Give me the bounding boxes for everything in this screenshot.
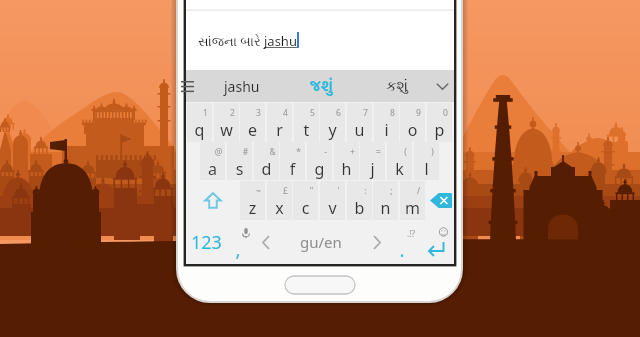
button[interactable]: = [360, 142, 385, 180]
staticText: ( [393, 146, 412, 158]
button[interactable]: Enter [419, 220, 454, 264]
staticText: 2 [220, 107, 239, 119]
staticText: 7 [353, 107, 372, 119]
staticText: 0 [433, 107, 452, 119]
button[interactable]: * [280, 142, 305, 180]
staticText: gu/en [300, 232, 342, 252]
button[interactable]: + [334, 142, 359, 180]
button[interactable]: jashu [210, 70, 274, 102]
staticText: h [334, 158, 359, 180]
button[interactable]: ; [373, 181, 398, 220]
staticText: ; [379, 185, 398, 197]
staticText: l [414, 158, 439, 180]
button[interactable]: Comma, voice input [225, 220, 253, 264]
staticText: .!? [397, 228, 425, 239]
button[interactable]: 5 [294, 103, 319, 142]
staticText: @ [206, 146, 225, 158]
button[interactable]: 3 [240, 103, 265, 142]
button[interactable]: 0 [427, 103, 452, 142]
staticText: ~ [246, 185, 265, 197]
button[interactable]: : [347, 181, 372, 220]
staticText: y [320, 119, 345, 141]
staticText: i [374, 119, 399, 141]
button[interactable]: 2 [214, 103, 239, 142]
staticText: 4 [273, 107, 292, 119]
staticText: c [293, 197, 318, 219]
staticText: & [260, 146, 279, 158]
button[interactable]: £ [267, 181, 292, 220]
button[interactable]: / [400, 181, 425, 220]
button[interactable]: Keyboard menu [186, 70, 202, 102]
button[interactable]: & [254, 142, 279, 180]
staticText: t [294, 119, 319, 141]
staticText: b [347, 197, 372, 219]
button[interactable]: " [293, 181, 318, 220]
staticText: j [360, 158, 385, 180]
staticText: - [313, 146, 332, 158]
staticText: e [240, 119, 265, 141]
staticText: કશું [386, 79, 409, 94]
staticText: q [187, 119, 212, 141]
button[interactable]: ) [414, 142, 439, 180]
button[interactable]: જશું [290, 70, 352, 102]
staticText: w [214, 119, 239, 141]
staticText: . [388, 237, 416, 263]
staticText: " [299, 185, 318, 197]
staticText: k [387, 158, 412, 180]
staticText: + [340, 146, 359, 158]
staticText: f [280, 158, 305, 180]
staticText: = [366, 146, 385, 158]
staticText: 123 [191, 230, 222, 255]
staticText: jashu [264, 32, 297, 50]
button[interactable]: 7 [347, 103, 372, 142]
button[interactable]: Previous [253, 220, 279, 264]
button[interactable]: - [307, 142, 332, 180]
staticText: u [347, 119, 372, 141]
staticText: jashu [224, 77, 260, 96]
button[interactable]: Period [391, 220, 419, 264]
staticText: સાંજના બારે [198, 32, 264, 50]
staticText: a [200, 158, 225, 180]
button[interactable]: Next [363, 220, 391, 264]
staticText: p [427, 119, 452, 141]
button[interactable]: ( [387, 142, 412, 180]
button[interactable]: 123 [187, 220, 225, 264]
staticText: જશું [310, 73, 333, 100]
staticText: ) [420, 146, 439, 158]
button[interactable]: @ [200, 142, 225, 180]
staticText: 6 [326, 107, 345, 119]
staticText: 9 [406, 107, 425, 119]
staticText: : [353, 185, 372, 197]
staticText: 5 [300, 107, 319, 119]
staticText: 1 [193, 107, 212, 119]
staticText: / [406, 185, 425, 197]
staticText: 8 [380, 107, 399, 119]
staticText: z [240, 197, 265, 219]
staticText: r [267, 119, 292, 141]
button[interactable]: 9 [400, 103, 425, 142]
staticText: £ [273, 185, 292, 197]
button[interactable]: 6 [320, 103, 345, 142]
staticText: ' [326, 185, 345, 197]
button[interactable]: કશું [372, 70, 422, 102]
staticText: n [373, 197, 398, 219]
staticText: d [254, 158, 279, 180]
button[interactable]: 1 [187, 103, 212, 142]
button[interactable]: gu/en [279, 220, 363, 264]
button[interactable]: Shift [187, 181, 239, 220]
staticText: , [224, 236, 252, 262]
staticText: * [286, 146, 305, 158]
staticText: 3 [246, 107, 265, 119]
button[interactable]: ' [320, 181, 345, 220]
staticText: m [400, 197, 425, 219]
staticText: x [267, 197, 292, 219]
button[interactable]: Expand suggestions [430, 70, 454, 102]
button[interactable]: Delete [427, 181, 454, 220]
button[interactable]: # [227, 142, 252, 180]
staticText: s [227, 158, 252, 180]
staticText: v [320, 197, 345, 219]
button[interactable]: ~ [240, 181, 265, 220]
button[interactable]: 8 [374, 103, 399, 142]
button[interactable]: 4 [267, 103, 292, 142]
staticText: o [400, 119, 425, 141]
